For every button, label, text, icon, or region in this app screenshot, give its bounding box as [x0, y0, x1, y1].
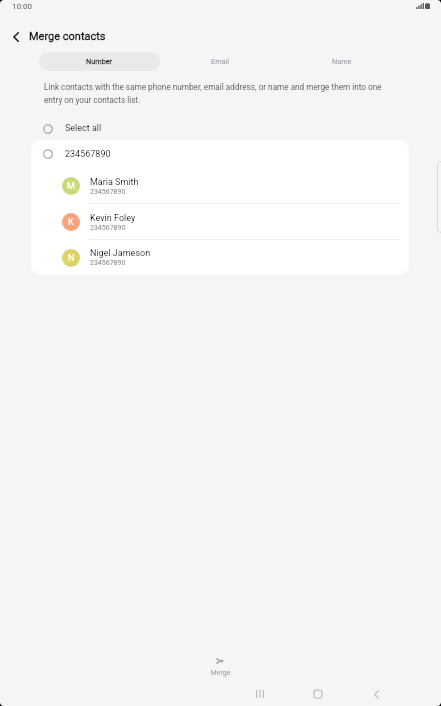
- staticText: 234567890: [65, 149, 111, 160]
- button[interactable]: N: [31, 240, 409, 275]
- button[interactable]: 234567890: [31, 140, 409, 168]
- button[interactable]: Select all: [0, 118, 441, 139]
- staticText: Maria Smith: [90, 177, 139, 188]
- staticText: 234567890: [90, 188, 126, 196]
- staticText: Merge contacts: [29, 30, 106, 43]
- button[interactable]: M: [31, 168, 409, 204]
- button[interactable]: Recent apps: [252, 686, 268, 702]
- button[interactable]: K: [31, 204, 409, 240]
- staticText: M: [67, 181, 75, 192]
- staticText: K: [68, 217, 74, 228]
- staticText: Name: [332, 57, 352, 66]
- staticText: Link contacts with the same phone number…: [44, 82, 384, 105]
- staticText: 10:00: [12, 2, 32, 11]
- button[interactable]: Name: [281, 52, 402, 71]
- staticText: 234567890: [90, 259, 126, 267]
- button[interactable]: Navigate up: [6, 27, 25, 46]
- button[interactable]: Merge: [196, 652, 245, 682]
- staticText: Select all: [65, 123, 102, 134]
- button[interactable]: Home: [310, 686, 326, 702]
- button[interactable]: Email: [160, 52, 281, 71]
- staticText: Number: [86, 57, 113, 66]
- staticText: Email: [211, 57, 230, 66]
- staticText: Kevin Foley: [90, 213, 136, 224]
- staticText: N: [68, 253, 75, 264]
- staticText: Nigel Jameson: [90, 248, 151, 259]
- button[interactable]: Back: [368, 686, 384, 702]
- staticText: 234567890: [90, 224, 126, 232]
- button[interactable]: Number: [39, 52, 160, 71]
- staticText: Merge: [196, 669, 245, 677]
